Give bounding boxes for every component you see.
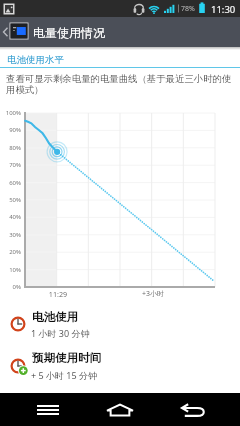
button[interactable]: Menu — [28, 393, 68, 426]
staticText: 30% — [0, 231, 21, 239]
staticText: +3小时 — [133, 289, 173, 299]
staticText: 11:29 — [38, 289, 78, 299]
staticText: 80% — [0, 144, 21, 152]
staticText: 1 小时 30 分钟 — [31, 327, 90, 339]
staticText: 90% — [0, 126, 21, 134]
staticText: 60% — [0, 179, 21, 187]
staticText: 11:30 — [211, 3, 236, 16]
staticText: 100% — [0, 109, 21, 117]
staticText: 电池使用 — [32, 310, 78, 324]
staticText: 20% — [0, 248, 21, 256]
button[interactable]: Home — [100, 393, 140, 426]
button[interactable]: Back — [172, 393, 212, 426]
staticText: 电量使用情况 — [33, 25, 105, 40]
button[interactable]: Back — [0, 17, 10, 47]
staticText: 78% — [181, 4, 195, 14]
staticText: 查看可显示剩余电量的电量曲线（基于最近三小时的使用模式） — [6, 73, 234, 96]
staticText: 10% — [0, 266, 21, 274]
staticText: + 5 小时 15 分钟 — [31, 369, 97, 381]
staticText: 50% — [0, 196, 21, 204]
staticText: 0% — [0, 283, 21, 291]
staticText: 电池使用水平 — [7, 54, 64, 66]
staticText: 40% — [0, 213, 21, 221]
button[interactable] — [0, 304, 240, 344]
staticText: 预期使用时间 — [32, 351, 101, 365]
button[interactable] — [0, 346, 240, 386]
staticText: 70% — [0, 161, 21, 169]
